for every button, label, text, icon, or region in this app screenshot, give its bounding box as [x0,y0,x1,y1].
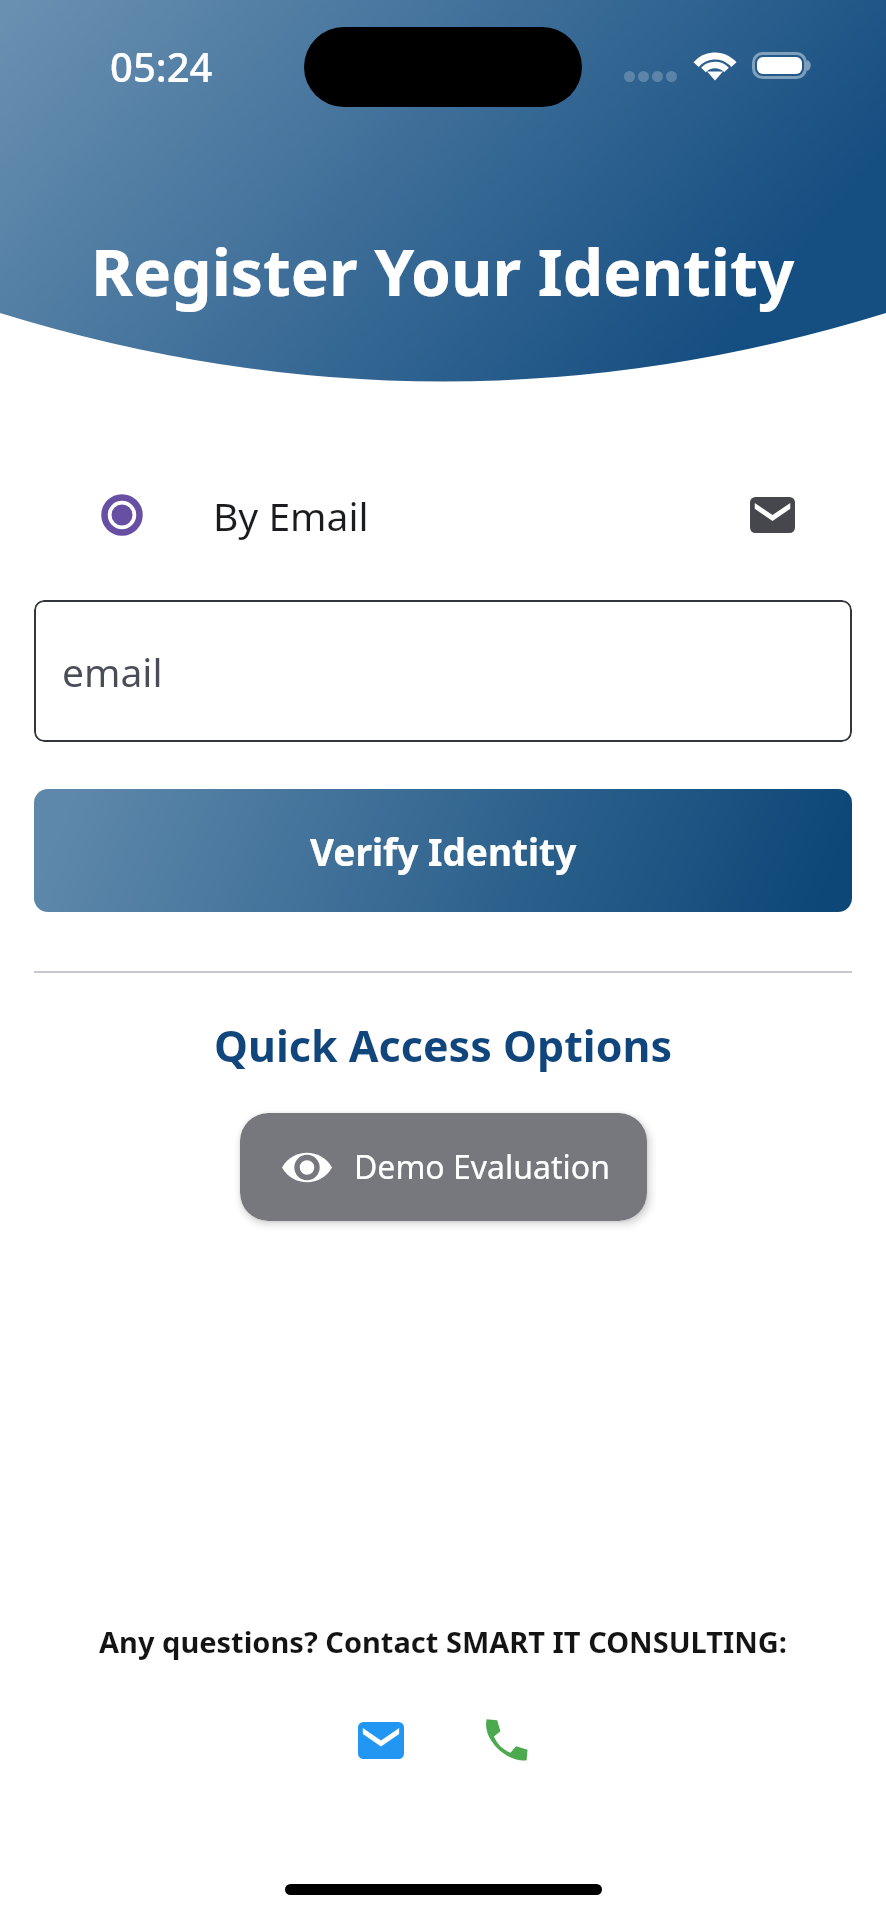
button[interactable]: email [34,600,852,742]
staticText: Any questions? Contact SMART IT CONSULTI… [0,1622,886,1661]
staticText: email [62,645,163,698]
button[interactable]: Verify Identity [34,789,852,912]
button[interactable]: By Email [34,477,852,553]
staticText: By Email [213,489,369,542]
staticText: 05:24 [110,39,213,93]
button[interactable]: Email [743,486,801,544]
staticText: Demo Evaluation [354,1145,610,1189]
staticText: Register Your Identity [91,228,795,315]
button[interactable]: Demo Evaluation [240,1113,647,1221]
button[interactable]: Send email [340,1699,422,1781]
staticText: Verify Identity [310,826,577,876]
staticText: Quick Access Options [0,1016,886,1075]
button[interactable]: Call [464,1699,546,1781]
